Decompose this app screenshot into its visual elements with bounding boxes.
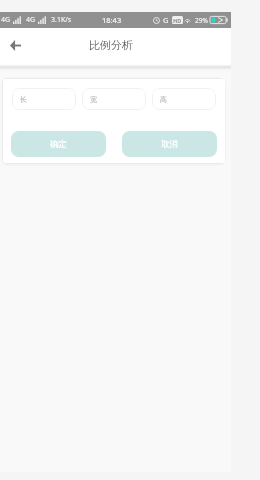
button[interactable]: 确定 xyxy=(11,131,106,157)
staticText: 18:43 xyxy=(102,15,122,25)
button[interactable]: 长 xyxy=(12,88,76,110)
staticText: 4G xyxy=(1,15,11,25)
staticText: 长 xyxy=(20,95,27,104)
staticText: 高 xyxy=(160,95,167,104)
button[interactable]: 取消 xyxy=(122,131,217,157)
staticText: 宽 xyxy=(90,95,97,104)
staticText: 取消 xyxy=(161,139,178,150)
staticText: 比例分析 xyxy=(89,38,133,52)
staticText: G xyxy=(163,15,169,25)
staticText: 3.1K/s xyxy=(51,15,72,25)
button[interactable]: 高 xyxy=(152,88,216,110)
staticText: 29% xyxy=(195,16,208,25)
staticText: HD xyxy=(173,17,182,24)
staticText: 4G xyxy=(26,15,36,25)
button[interactable]: Back xyxy=(5,35,25,55)
staticText: 确定 xyxy=(50,139,67,150)
button[interactable]: 宽 xyxy=(82,88,146,110)
